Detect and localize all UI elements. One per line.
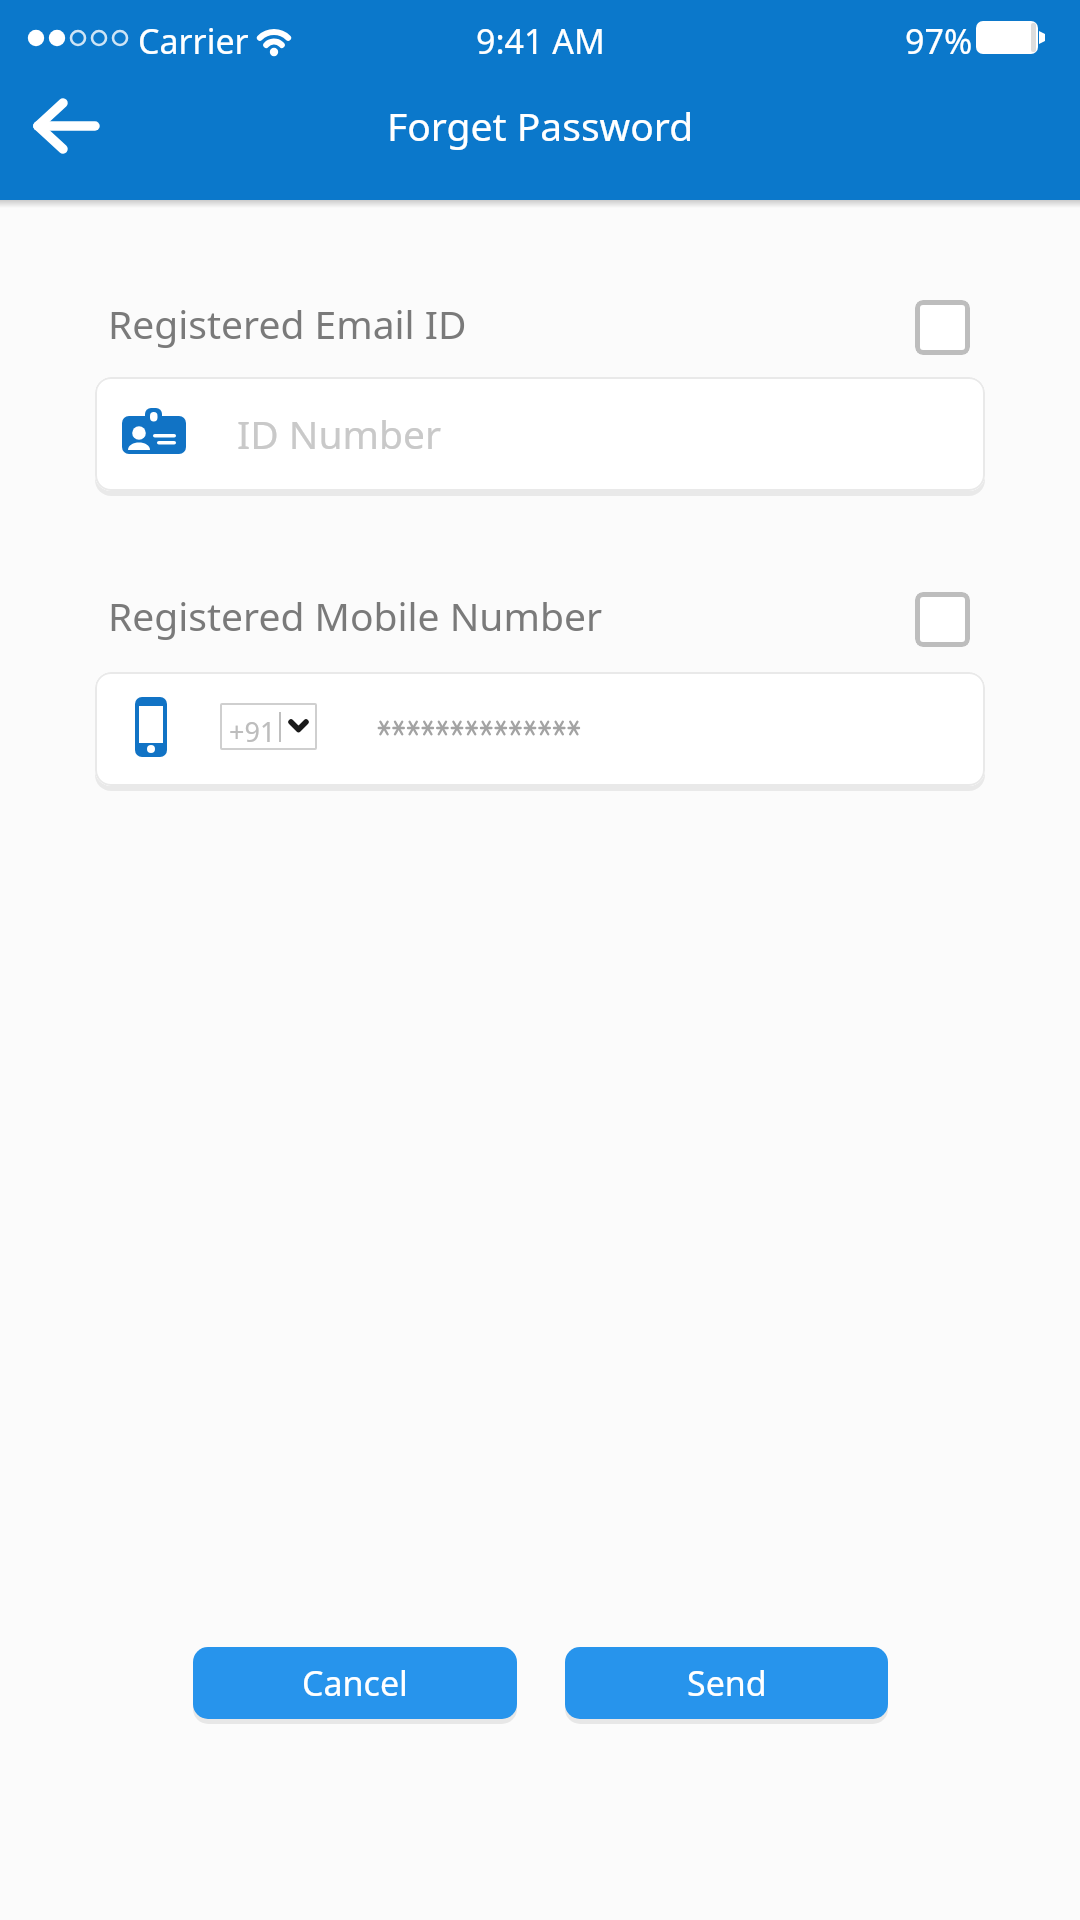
staticText: Cancel bbox=[302, 1660, 408, 1706]
staticText: Send bbox=[687, 1660, 767, 1706]
button[interactable]: +91 bbox=[95, 672, 985, 786]
button[interactable] bbox=[20, 86, 112, 166]
button[interactable]: Cancel bbox=[193, 1647, 517, 1719]
staticText: 9:41 AM bbox=[476, 18, 605, 64]
staticText: +91 bbox=[229, 713, 276, 750]
button[interactable]: +91 bbox=[220, 703, 317, 750]
staticText: Forget Password bbox=[387, 99, 694, 152]
button[interactable] bbox=[915, 300, 970, 355]
staticText: Carrier bbox=[138, 18, 249, 64]
staticText: Registered Email ID bbox=[108, 297, 467, 350]
button[interactable]: Send bbox=[565, 1647, 888, 1719]
staticText: 97% bbox=[905, 18, 973, 64]
staticText: Registered Mobile Number bbox=[108, 589, 603, 642]
button[interactable]: ID Number bbox=[95, 377, 985, 491]
button[interactable] bbox=[915, 592, 970, 647]
staticText: ID Number bbox=[237, 407, 442, 460]
